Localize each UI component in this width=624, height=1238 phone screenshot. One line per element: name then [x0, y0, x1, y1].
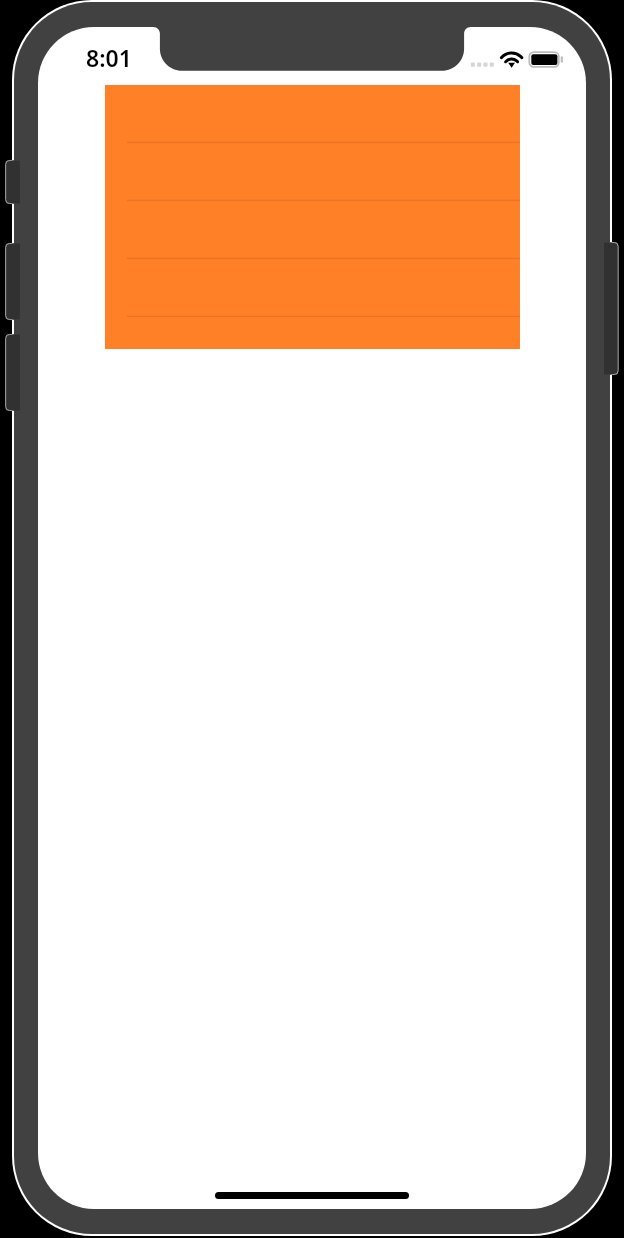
staticText: 8:01 [86, 42, 132, 73]
